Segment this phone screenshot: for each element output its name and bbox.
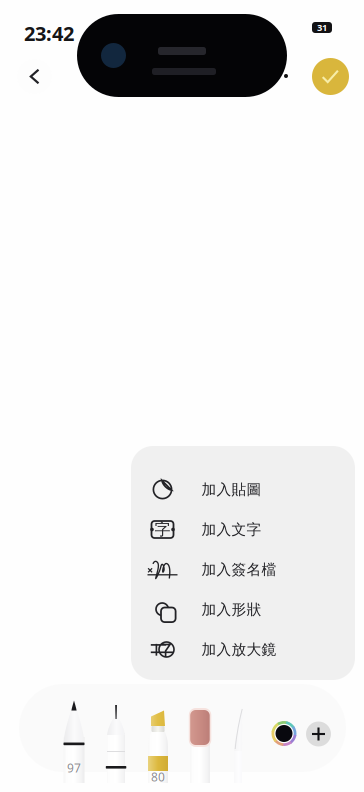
staticText: 加入簽名檔 [201, 560, 276, 578]
staticText: 加入文字 [201, 520, 261, 538]
button[interactable]: 加入放大鏡 [131, 629, 354, 669]
button[interactable]: 加入形狀 [131, 589, 354, 629]
button[interactable]: Colour [271, 721, 296, 746]
button[interactable]: 加入貼圖 [131, 469, 354, 509]
staticText: 80 [151, 769, 165, 785]
button[interactable]: Back [17, 59, 52, 94]
button[interactable]: Add [306, 721, 331, 746]
button[interactable]: Done [312, 58, 349, 95]
staticText: 字 [154, 520, 170, 539]
staticText: 31 [317, 21, 327, 34]
staticText: 97 [67, 760, 81, 776]
button[interactable]: 字 [131, 509, 354, 549]
button[interactable]: 加入簽名檔 [131, 549, 354, 589]
staticText: 加入形狀 [201, 600, 261, 618]
staticText: 23:42 [24, 20, 74, 47]
staticText: 加入放大鏡 [201, 640, 276, 658]
staticText: 加入貼圖 [201, 480, 261, 498]
